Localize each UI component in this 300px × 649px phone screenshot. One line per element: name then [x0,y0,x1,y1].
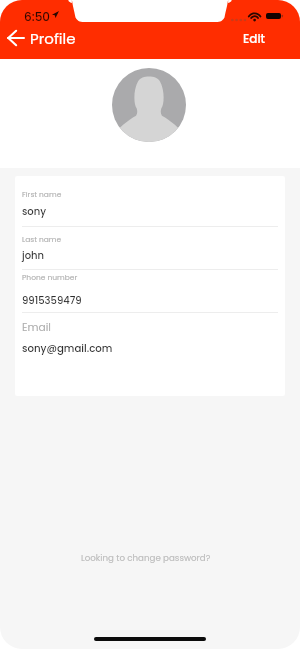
staticText: john [22,248,44,262]
staticText: First name [22,189,62,199]
staticText: sony [22,204,47,218]
button[interactable]: Profile [30,28,76,49]
staticText: Last name [22,234,62,244]
button[interactable]: Back [2,27,30,51]
button[interactable] [15,181,285,231]
staticText: 9915359479 [22,293,82,307]
button[interactable] [15,226,285,269]
staticText: Looking to change password? [81,552,211,564]
button[interactable]: Looking to change password? [75,546,217,570]
button[interactable] [15,312,285,396]
staticText: Email [22,320,51,335]
staticText: Phone number [22,272,78,282]
staticText: sony@gmail.com [22,341,113,355]
staticText: 6:50 [24,8,51,25]
button[interactable]: Edit [235,22,273,48]
staticText: Profile [30,28,76,49]
staticText: Edit [243,30,266,47]
button[interactable] [15,264,285,307]
